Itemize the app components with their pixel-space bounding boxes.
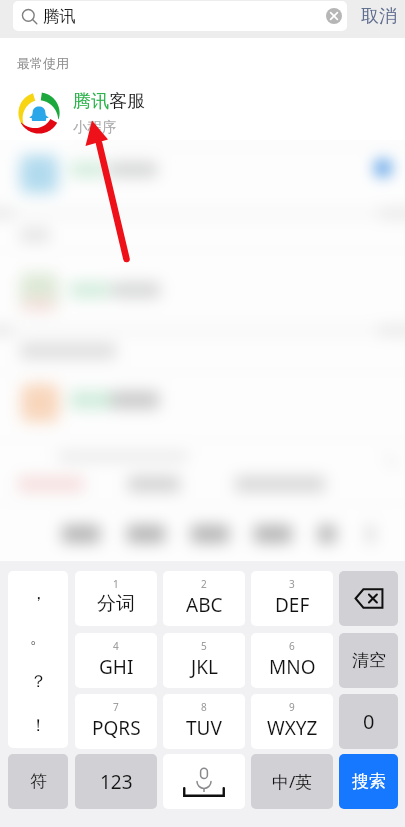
staticText: JKL (191, 654, 218, 680)
button[interactable]: 符 (8, 754, 68, 809)
staticText: WXYZ (267, 715, 318, 741)
staticText: 6 (289, 639, 295, 653)
button[interactable]: 搜索 (339, 754, 398, 809)
staticText: MNO (269, 654, 316, 680)
staticText: 9 (289, 700, 295, 714)
staticText: GHI (99, 654, 134, 680)
staticText: 3 (289, 577, 295, 591)
staticText: 8 (201, 700, 207, 714)
button[interactable]: 腾讯客服 (0, 87, 405, 139)
button[interactable]: 3 (251, 571, 333, 626)
staticText: 取消 (361, 5, 397, 28)
staticText: 符 (30, 771, 47, 792)
button[interactable]: 8 (163, 694, 245, 749)
staticText: DEF (275, 592, 310, 618)
staticText: ABC (186, 592, 223, 618)
staticText: 1 (113, 577, 119, 591)
staticText: 最常使用 (17, 55, 69, 71)
staticText: ？ (30, 671, 47, 692)
button[interactable]: ， (8, 571, 68, 748)
staticText: ， (30, 583, 47, 604)
staticText: 。 (30, 627, 47, 648)
button[interactable]: 腾讯 (13, 1, 347, 31)
button[interactable]: 1 (75, 571, 157, 626)
staticText: 2 (201, 577, 207, 591)
staticText: 4 (113, 639, 119, 653)
button[interactable]: 中/英 (251, 754, 333, 809)
button[interactable]: 清空 (339, 633, 398, 688)
button[interactable]: 5 (163, 633, 245, 688)
staticText: 分词 (97, 592, 135, 616)
staticText: 腾讯客服 (73, 90, 145, 113)
staticText: 0 (363, 708, 375, 735)
button[interactable]: Voice input (163, 754, 245, 809)
staticText: PQRS (92, 715, 141, 741)
button[interactable]: 9 (251, 694, 333, 749)
button[interactable]: 123 (75, 754, 157, 809)
staticText: 5 (201, 639, 207, 653)
staticText: 搜索 (352, 771, 386, 792)
staticText: 小程序 (73, 118, 117, 136)
staticText: 123 (100, 769, 133, 795)
staticText: 清空 (352, 650, 386, 671)
button[interactable]: 取消 (353, 0, 405, 32)
staticText: 中/英 (272, 770, 313, 793)
button[interactable]: 7 (75, 694, 157, 749)
staticText: 腾讯 (43, 6, 76, 27)
staticText: 7 (113, 700, 119, 714)
button[interactable]: 0 (339, 694, 398, 749)
button[interactable]: 6 (251, 633, 333, 688)
staticText: ！ (30, 715, 47, 736)
staticText: TUV (186, 715, 222, 741)
button[interactable]: Clear text (326, 8, 342, 24)
button[interactable]: 4 (75, 633, 157, 688)
button[interactable]: Backspace (339, 571, 398, 626)
button[interactable]: 2 (163, 571, 245, 626)
